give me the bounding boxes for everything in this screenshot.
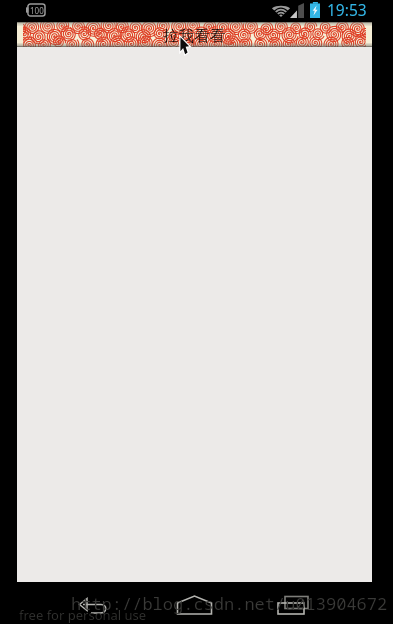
button[interactable]: 拉我看看 bbox=[17, 22, 372, 47]
staticText: http://blog.csdn.net/u013904672 bbox=[71, 592, 388, 615]
staticText: 拉我看看 bbox=[163, 26, 225, 46]
staticText: 100 bbox=[30, 5, 44, 16]
staticText: free for personal use bbox=[19, 606, 147, 624]
button[interactable]: Back bbox=[72, 592, 116, 618]
button[interactable]: Home bbox=[172, 592, 217, 618]
button[interactable]: Recent apps bbox=[272, 592, 316, 618]
staticText: 19:53 bbox=[327, 0, 367, 20]
